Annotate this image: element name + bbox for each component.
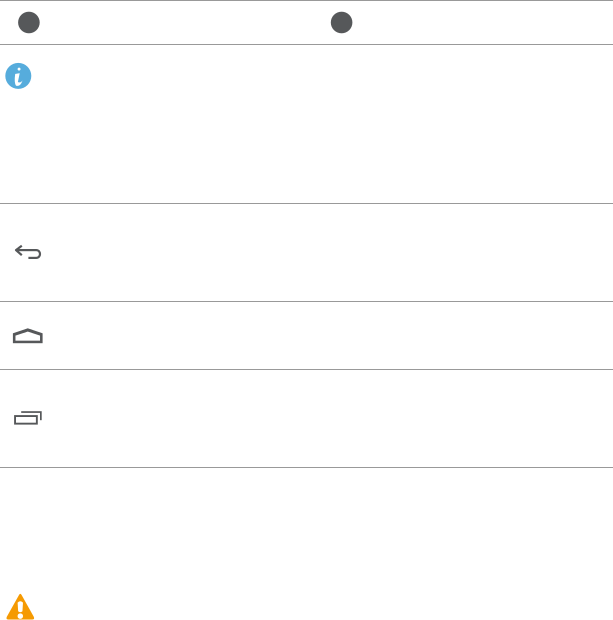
button[interactable]: Option one: [18, 12, 40, 33]
button[interactable]: Option two: [331, 12, 352, 33]
button[interactable]: Home: [0, 302, 613, 369]
button[interactable]: Recent apps: [0, 370, 613, 467]
button[interactable]: Information: [5, 63, 31, 89]
button[interactable]: Back: [0, 204, 613, 301]
